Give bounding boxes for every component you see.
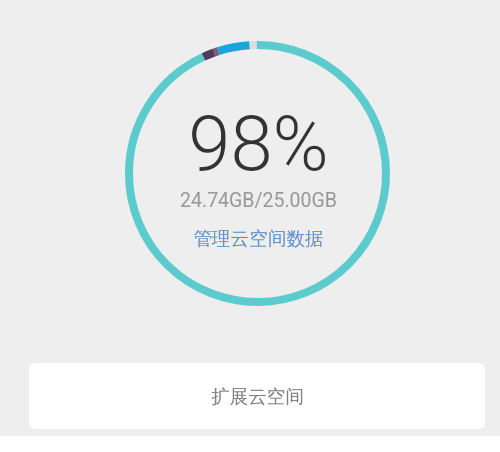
button[interactable]: 管理云空间数据 bbox=[183, 221, 334, 256]
staticText: 管理云空间数据 bbox=[193, 227, 324, 250]
staticText: 98% bbox=[188, 99, 329, 188]
staticText: 24.74GB/25.00GB bbox=[180, 189, 337, 212]
button[interactable]: 扩展云空间 bbox=[29, 363, 485, 429]
staticText: 扩展云空间 bbox=[211, 385, 304, 408]
other: Cloud storage usage 98 percent bbox=[125, 41, 390, 306]
